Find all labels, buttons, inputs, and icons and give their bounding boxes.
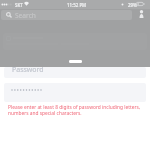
staticText: 29% [128,2,137,8]
staticText: Please enter at least 8 digits of passwo… [8,104,147,116]
button[interactable] [4,83,146,102]
staticText: 11:52 PM [67,2,87,8]
staticText: SKT [15,2,23,8]
button[interactable]: Password [4,67,146,78]
staticText: Password [12,67,44,75]
staticText: Search [15,11,36,20]
button[interactable]: Search [1,10,132,20]
button[interactable]: Account [134,7,148,21]
